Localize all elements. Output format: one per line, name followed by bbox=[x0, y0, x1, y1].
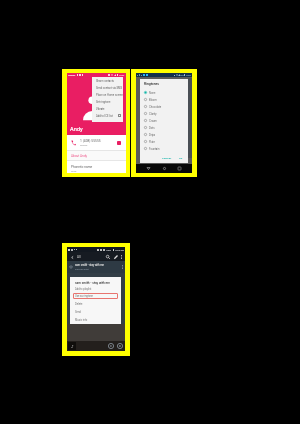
staticText: OK bbox=[179, 157, 183, 160]
staticText: Place on Home screen bbox=[96, 93, 123, 96]
staticText: Clarity bbox=[149, 112, 157, 115]
button[interactable]: Delete bbox=[70, 301, 121, 308]
button[interactable]: Add to ICE list bbox=[92, 112, 123, 119]
button[interactable]: Music info bbox=[70, 316, 121, 324]
staticText: Dots bbox=[149, 126, 155, 129]
button[interactable]: Back bbox=[69, 254, 75, 260]
staticText: Add to playlist bbox=[75, 288, 92, 291]
button[interactable]: Send bbox=[70, 308, 121, 316]
staticText: sam smith - stay with me bbox=[75, 264, 104, 267]
button[interactable]: Play bbox=[107, 342, 115, 350]
button[interactable]: OK bbox=[177, 156, 185, 161]
staticText: 11:07 bbox=[186, 74, 191, 76]
button[interactable]: CANCEL bbox=[160, 156, 174, 161]
staticText: Use as ringtone bbox=[75, 295, 93, 298]
button[interactable]: Drips bbox=[140, 131, 188, 138]
button[interactable]: Use as ringtone bbox=[73, 293, 118, 299]
button[interactable]: Recents bbox=[176, 165, 183, 172]
staticText: Phonetic name bbox=[71, 165, 93, 169]
staticText: Music info bbox=[75, 319, 88, 322]
staticText: 17% bbox=[180, 74, 184, 76]
button[interactable]: Search bbox=[104, 253, 111, 260]
button[interactable]: None bbox=[140, 89, 188, 96]
button[interactable]: Share contacts bbox=[92, 77, 123, 84]
button[interactable]: More options bbox=[119, 254, 124, 259]
staticText: Send contact via SMS bbox=[96, 86, 123, 89]
staticText: ♪ bbox=[71, 344, 74, 349]
staticText: Andy bbox=[70, 126, 83, 133]
staticText: 10:10 PM bbox=[115, 249, 124, 251]
staticText: Share contacts bbox=[96, 79, 114, 82]
staticText: Chocolate bbox=[149, 105, 162, 108]
staticText: Crown bbox=[149, 119, 157, 122]
staticText: Send bbox=[75, 311, 81, 314]
button[interactable]: Set ringtone bbox=[92, 98, 123, 105]
button[interactable]: Chocolate bbox=[140, 103, 188, 110]
button[interactable]: Add to playlist bbox=[70, 287, 121, 292]
staticText: Andy bbox=[71, 170, 77, 173]
staticText: About Andy bbox=[71, 154, 87, 158]
button[interactable]: Flute bbox=[140, 138, 188, 145]
staticText: Bloom bbox=[149, 98, 157, 101]
button[interactable]: Back bbox=[145, 165, 152, 172]
button[interactable]: Send contact via SMS bbox=[92, 84, 123, 91]
staticText: None bbox=[149, 91, 156, 94]
button[interactable]: About Andy bbox=[67, 151, 126, 160]
staticText: 11:07 bbox=[119, 74, 125, 76]
button[interactable]: Vibrate bbox=[92, 105, 123, 112]
staticText: Vibrate bbox=[96, 107, 105, 110]
button[interactable]: Fountain bbox=[140, 145, 188, 152]
staticText: Android bbox=[68, 74, 76, 76]
button[interactable]: Clarity bbox=[140, 110, 188, 117]
staticText: sam smith - stay with me bbox=[75, 281, 110, 285]
staticText: Mobile bbox=[80, 144, 88, 147]
staticText: Set ringtone bbox=[96, 100, 111, 103]
button[interactable]: Dots bbox=[140, 124, 188, 131]
staticText: 1 (408) 55555 bbox=[80, 139, 101, 143]
staticText: Drips bbox=[149, 133, 156, 136]
button[interactable]: Message bbox=[117, 141, 121, 145]
button[interactable]: Crown bbox=[140, 117, 188, 124]
staticText: CANCEL bbox=[162, 157, 172, 160]
staticText: Delete bbox=[75, 303, 83, 306]
staticText: All bbox=[77, 255, 81, 259]
staticText: unknown artist bbox=[75, 268, 89, 270]
button[interactable]: Next track bbox=[116, 342, 124, 350]
button[interactable]: Home bbox=[161, 165, 168, 172]
staticText: Fountain bbox=[149, 147, 160, 150]
button[interactable]: Bloom bbox=[140, 96, 188, 103]
staticText: Ringtones bbox=[144, 82, 159, 86]
button[interactable]: Place on Home screen bbox=[92, 91, 123, 98]
staticText: Flute bbox=[149, 140, 155, 143]
staticText: 100% bbox=[106, 249, 112, 251]
button[interactable]: Edit bbox=[112, 253, 119, 260]
staticText: Add to ICE list bbox=[96, 114, 113, 117]
